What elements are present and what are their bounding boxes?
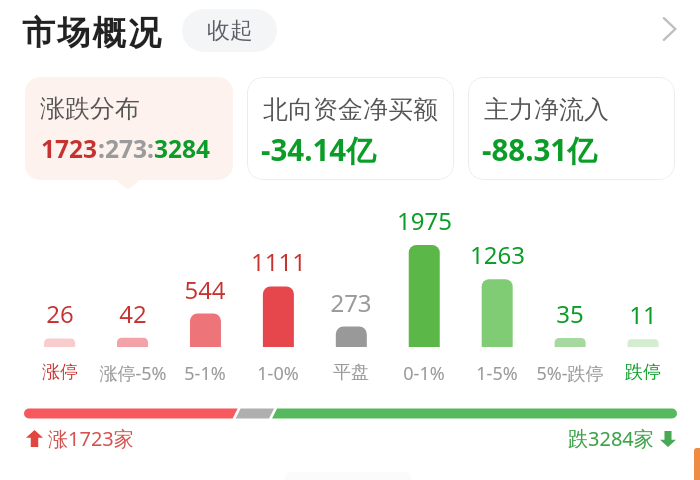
button[interactable]: More details	[646, 5, 694, 53]
staticText: -34.14亿	[261, 129, 376, 169]
staticText: 3284	[154, 132, 211, 165]
staticText: 1-0%	[257, 361, 299, 386]
staticText: 涨跌分布	[40, 93, 140, 124]
staticText: 北向资金净买额	[263, 94, 438, 125]
staticText: 1723	[41, 132, 98, 165]
staticText: -88.31亿	[482, 129, 597, 169]
button[interactable]: 主力净流入	[468, 77, 675, 180]
staticText: 涨停-5%	[99, 361, 167, 386]
staticText: 市场概况	[22, 12, 164, 54]
staticText: 35	[556, 297, 584, 323]
staticText: 26	[46, 297, 74, 323]
staticText: 涨1723家	[48, 425, 134, 452]
staticText: 5%-跌停	[536, 361, 604, 386]
staticText: 收起	[207, 16, 253, 45]
staticText: 0-1%	[403, 361, 445, 386]
staticText: :273:	[98, 132, 154, 165]
staticText: 5-1%	[184, 361, 226, 386]
button[interactable]: 涨跌分布	[25, 77, 233, 180]
staticText: 11	[629, 298, 657, 324]
staticText: 42	[119, 297, 147, 323]
staticText: 1-5%	[476, 361, 518, 386]
staticText: 544	[184, 273, 226, 299]
staticText: 1263	[470, 238, 525, 264]
button[interactable]: 收起	[182, 9, 277, 52]
staticText: 平盘	[333, 361, 369, 384]
staticText: 主力净流入	[484, 94, 609, 125]
button[interactable]: 北向资金净买额	[247, 77, 454, 180]
staticText: 273	[330, 286, 372, 312]
staticText: 1975	[397, 204, 452, 230]
staticText: 跌停	[625, 361, 661, 384]
staticText: 跌3284家	[568, 425, 654, 452]
staticText: 涨停	[42, 361, 78, 384]
staticText: 1111	[251, 245, 306, 271]
